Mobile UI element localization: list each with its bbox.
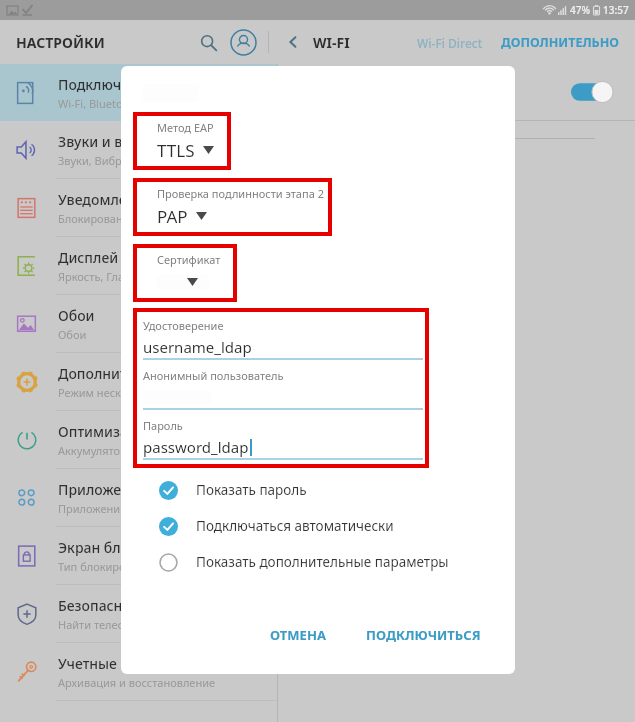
staticText: Пароль [143, 418, 183, 433]
staticText: username_ldap [143, 337, 252, 357]
button[interactable]: Безопасность [0, 585, 277, 642]
staticText: Приложения [58, 501, 127, 516]
button[interactable]: Подключаться автоматически [121, 508, 515, 544]
button[interactable]: Дисплей [0, 237, 277, 294]
staticText: WI-FI [313, 33, 350, 52]
staticText: PAP [157, 205, 188, 228]
staticText: ПОДКЛЮЧИТЬСЯ [366, 626, 481, 644]
staticText: Wi-Fi, Bluetooth [58, 96, 141, 111]
staticText: 13:57 [603, 3, 629, 17]
staticText: Уведомления [58, 190, 153, 209]
button[interactable]: Экран блокировки [0, 527, 277, 584]
button[interactable]: Учетная запись [226, 25, 260, 59]
staticText: Метод EAP [157, 120, 214, 135]
button[interactable]: Дополнительные [0, 353, 277, 410]
button[interactable]: Обои [0, 295, 277, 352]
button[interactable]: Уведомления [0, 179, 277, 236]
staticText: Обои [58, 306, 95, 325]
staticText: Учетные записи [58, 654, 170, 673]
staticText: ОТМЕНА [270, 626, 326, 644]
staticText: Блокирование [58, 211, 136, 226]
staticText: ДОПОЛНИТЕЛЬНО [501, 34, 619, 51]
button[interactable]: Приложения [0, 469, 277, 526]
staticText: Подключаться автоматически [196, 517, 394, 535]
staticText: Архивация и восстановление [58, 675, 216, 690]
button[interactable]: Поиск [192, 26, 224, 58]
button[interactable]: ПОДКЛЮЧИТЬСЯ [356, 620, 491, 650]
staticText: Удостоверение [143, 318, 224, 333]
staticText: Звуки, Вибрация [58, 153, 148, 168]
staticText: Аккумулятор [58, 443, 127, 458]
staticText: Обои [58, 327, 87, 342]
staticText: Wi-Fi Direct [417, 35, 483, 51]
staticText: Проверка подлинности этапа 2 [157, 186, 324, 201]
staticText: Яркость, Главный [58, 269, 153, 284]
staticText: Подключения [58, 75, 155, 94]
staticText: Безопасность [58, 596, 153, 615]
button[interactable]: Сертификат [135, 246, 235, 300]
button[interactable]: Учетные записи [0, 643, 277, 700]
button[interactable]: ОТМЕНА [260, 620, 336, 650]
staticText: TTLS [157, 139, 195, 162]
button[interactable]: Оптимизация [0, 411, 277, 468]
button[interactable]: Назад [281, 30, 305, 54]
button[interactable]: Wi-Fi Direct [411, 27, 489, 59]
staticText: password_ldap [143, 437, 249, 457]
staticText: Найти телефон [58, 617, 139, 632]
button[interactable] [135, 270, 235, 294]
staticText: Дисплей [58, 248, 119, 267]
staticText: Звуки и вибрация [58, 132, 183, 151]
staticText: Режим нескольких [58, 385, 159, 400]
staticText: Оптимизация [58, 422, 154, 441]
staticText: Сертификат [157, 252, 221, 267]
staticText: НАСТРОЙКИ [16, 33, 105, 52]
button[interactable]: Проверка подлинности этапа 2 [135, 180, 330, 234]
staticText: Показать пароль [196, 481, 307, 499]
button[interactable]: Показать дополнительные параметры [121, 544, 515, 580]
staticText: 47% [570, 3, 590, 17]
button[interactable]: Пароль [143, 418, 423, 460]
button[interactable]: ДОПОЛНИТЕЛЬНО [495, 26, 625, 59]
button[interactable]: Wi-Fi переключатель [571, 81, 613, 103]
staticText: Дополнительные [58, 364, 179, 383]
staticText: Экран блокировки [58, 538, 188, 557]
button[interactable]: Подключения [0, 64, 277, 121]
staticText: Анонимный пользователь [143, 368, 284, 383]
staticText: Приложения [58, 480, 147, 499]
button[interactable]: Удостоверение [143, 318, 423, 360]
button[interactable]: Анонимный пользователь [143, 368, 423, 410]
button[interactable]: Метод EAP [135, 114, 229, 168]
staticText: Тип блокировки [58, 559, 145, 574]
staticText: Показать дополнительные параметры [196, 553, 449, 571]
button[interactable]: Показать пароль [121, 472, 515, 508]
button[interactable]: Звуки и вибрация [0, 121, 277, 178]
